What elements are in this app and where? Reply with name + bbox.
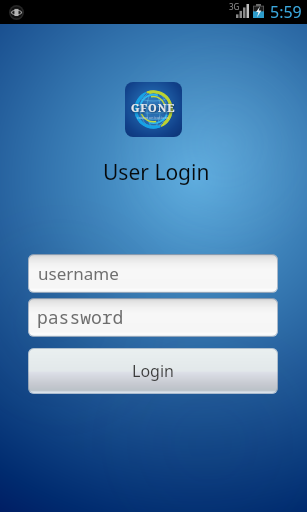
staticText: communications [137,115,170,120]
button[interactable]: Login [28,348,278,394]
staticText: GFONE [131,100,176,115]
staticText: User Login [103,158,210,187]
staticText: username [38,262,119,285]
staticText: Login [132,360,174,382]
staticText: password [37,305,124,330]
button[interactable]: password [28,298,278,337]
staticText: 5:59 [270,1,302,23]
staticText: 3G [229,1,240,12]
button[interactable]: username [28,254,278,293]
